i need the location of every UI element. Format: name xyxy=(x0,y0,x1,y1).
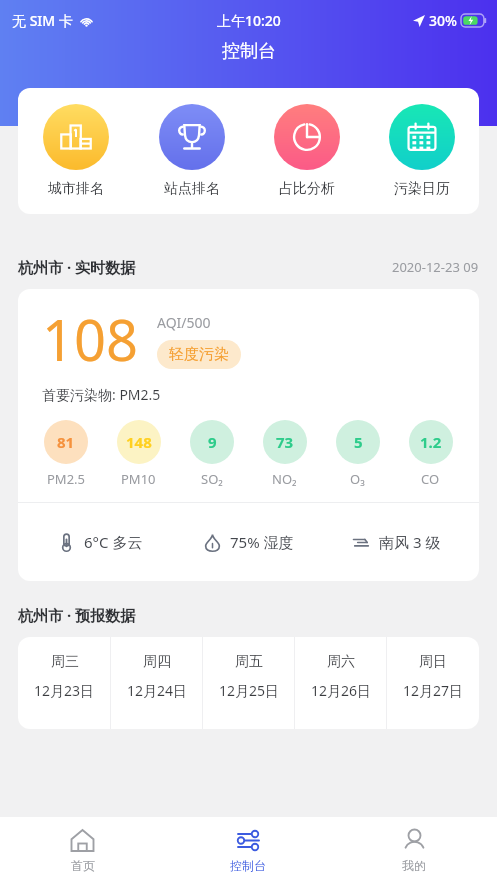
staticText: 城市排名 xyxy=(48,180,104,198)
staticText: AQI/500 xyxy=(157,313,211,332)
staticText: PM10 xyxy=(121,470,156,488)
button[interactable]: 站点排名 xyxy=(134,104,249,198)
button[interactable]: 周三 xyxy=(18,637,111,729)
staticText: NO₂ xyxy=(272,470,297,488)
staticText: SO₂ xyxy=(201,470,223,488)
staticText: 148 xyxy=(126,432,152,452)
staticText: 12月23日 xyxy=(34,681,95,700)
staticText: 12月26日 xyxy=(311,681,372,700)
other: 控制台 xyxy=(236,828,261,853)
staticText: 75% 湿度 xyxy=(230,532,294,552)
staticText: 12月25日 xyxy=(219,681,280,700)
staticText: 9 xyxy=(208,432,217,452)
staticText: 108 xyxy=(42,301,139,377)
staticText: O₃ xyxy=(350,470,365,488)
staticText: PM2.5 xyxy=(47,470,86,488)
staticText: 2020-12-23 09 xyxy=(392,258,479,276)
button[interactable]: 城市排名 xyxy=(18,104,134,198)
staticText: 周日 xyxy=(419,653,447,671)
button[interactable]: 周六 xyxy=(295,637,387,729)
staticText: 站点排名 xyxy=(164,180,220,198)
button[interactable]: 控制台 xyxy=(165,817,331,883)
staticText: 首页 xyxy=(71,858,95,873)
staticText: 12月24日 xyxy=(127,681,188,700)
staticText: 周五 xyxy=(235,653,263,671)
other: 我的 xyxy=(402,828,427,853)
button[interactable]: 周日 xyxy=(387,637,479,729)
staticText: 上午10:20 xyxy=(217,11,281,30)
button[interactable]: 108 xyxy=(18,289,479,581)
button[interactable]: 我的 xyxy=(331,817,497,883)
staticText: 周四 xyxy=(143,653,171,671)
staticText: 6°C 多云 xyxy=(84,532,143,552)
staticText: 12月27日 xyxy=(403,681,464,700)
staticText: 73 xyxy=(276,432,294,452)
staticText: 杭州市 · 预报数据 xyxy=(18,605,136,625)
staticText: 首要污染物: PM2.5 xyxy=(42,385,161,404)
staticText: 污染日历 xyxy=(394,180,450,198)
button[interactable]: 污染日历 xyxy=(364,104,479,198)
button[interactable]: 首页 xyxy=(0,817,165,883)
button[interactable]: 周五 xyxy=(203,637,295,729)
staticText: CO xyxy=(421,470,440,488)
staticText: 占比分析 xyxy=(279,180,335,198)
staticText: 30% xyxy=(429,11,457,30)
staticText: 5 xyxy=(354,432,363,452)
staticText: 周六 xyxy=(327,653,355,671)
staticText: 控制台 xyxy=(230,858,266,873)
staticText: 轻度污染 xyxy=(169,345,229,364)
staticText: 81 xyxy=(57,432,75,452)
staticText: 1.2 xyxy=(420,432,442,452)
staticText: 无 SIM 卡 xyxy=(12,11,73,30)
staticText: 南风 3 级 xyxy=(379,532,441,552)
other: 首页 xyxy=(70,828,95,853)
staticText: 控制台 xyxy=(222,40,276,63)
button[interactable]: 占比分析 xyxy=(249,104,364,198)
staticText: 杭州市 · 实时数据 xyxy=(18,257,136,277)
staticText: 周三 xyxy=(51,653,79,671)
button[interactable]: 周四 xyxy=(111,637,203,729)
staticText: 我的 xyxy=(402,858,426,873)
